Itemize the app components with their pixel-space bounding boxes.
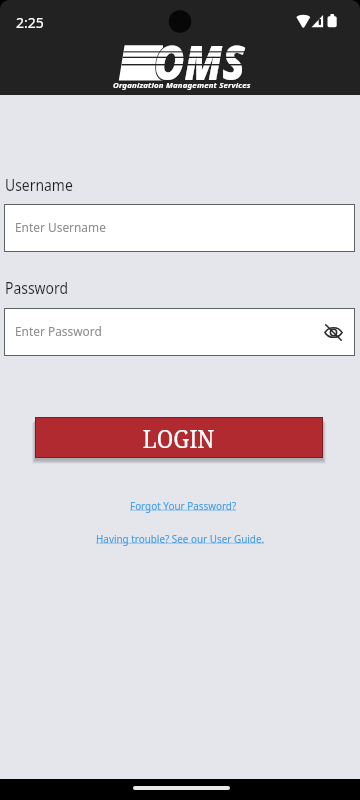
staticText: 2:25 bbox=[16, 13, 44, 32]
staticText: Organization Management Services bbox=[113, 80, 251, 91]
staticText: Password bbox=[5, 277, 68, 298]
button[interactable]: Enter Password bbox=[4, 308, 355, 356]
staticText: Enter Username bbox=[15, 218, 106, 235]
staticText: LOGIN bbox=[143, 420, 215, 455]
button[interactable]: Forgot Your Password? bbox=[130, 499, 237, 512]
button[interactable]: LOGIN bbox=[35, 417, 323, 458]
button[interactable]: Enter Username bbox=[4, 204, 355, 252]
staticText: OMS bbox=[154, 30, 245, 80]
staticText: Username bbox=[5, 174, 73, 195]
button[interactable]: Having trouble? See our User Guide. bbox=[96, 532, 265, 545]
staticText: Enter Password bbox=[15, 322, 102, 339]
button[interactable]: Show password bbox=[320, 319, 346, 345]
staticText: OMS bbox=[153, 29, 248, 81]
